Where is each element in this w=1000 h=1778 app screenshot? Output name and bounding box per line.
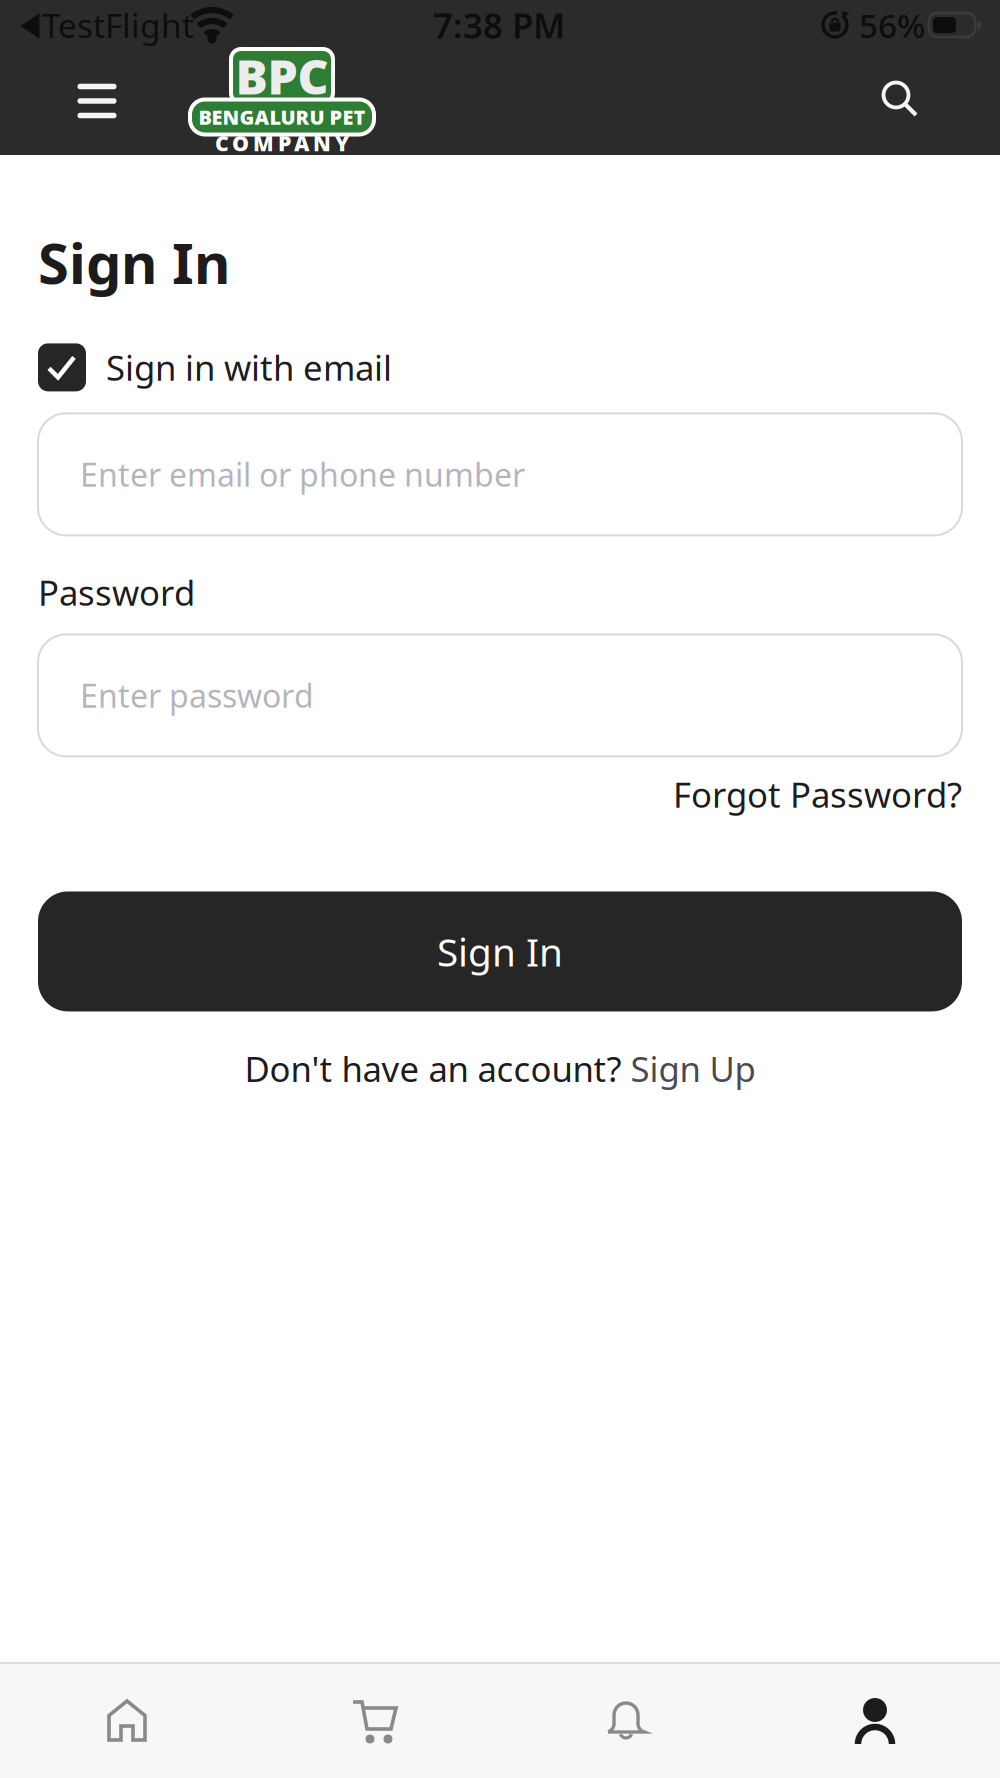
- button[interactable]: Enter email or phone number: [38, 413, 962, 535]
- button[interactable]: Sign Up: [630, 1045, 755, 1091]
- staticText: Forgot Password?: [673, 771, 962, 817]
- button[interactable]: Notifications: [581, 1681, 671, 1761]
- staticText: Sign In: [437, 926, 563, 977]
- staticText: BENGALURU PET: [198, 104, 365, 130]
- button[interactable]: Sign In: [38, 891, 962, 1011]
- staticText: Sign in with email: [106, 344, 392, 390]
- button[interactable]: Enter password: [38, 634, 962, 756]
- button[interactable]: Sign in with email: [38, 343, 392, 391]
- button[interactable]: Menu: [67, 71, 127, 131]
- staticText: 56%: [859, 3, 925, 47]
- staticText: Sign In: [38, 225, 230, 299]
- button[interactable]: Search: [871, 70, 927, 126]
- button[interactable]: Cart: [331, 1681, 421, 1761]
- staticText: Password: [38, 569, 195, 615]
- staticText: Enter email or phone number: [80, 453, 525, 496]
- button[interactable]: Forgot Password?: [673, 771, 962, 817]
- staticText: COMPANY: [215, 129, 349, 157]
- staticText: TestFlight: [42, 3, 194, 47]
- button[interactable]: Profile: [830, 1681, 920, 1761]
- staticText: BPC: [235, 44, 328, 108]
- button[interactable]: Home: [82, 1681, 172, 1761]
- staticText: Enter password: [80, 674, 314, 717]
- staticText: Sign Up: [630, 1045, 755, 1091]
- staticText: 7:38 PM: [433, 2, 565, 48]
- staticText: Don't have an account?: [244, 1045, 630, 1091]
